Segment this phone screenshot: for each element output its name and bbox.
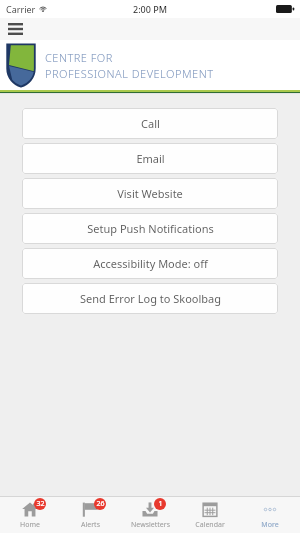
staticText: 2:00 PM xyxy=(133,3,167,15)
staticText: Setup Push Notifications xyxy=(87,221,214,236)
staticText: 1 xyxy=(158,499,163,509)
staticText: Calendar xyxy=(195,520,225,530)
staticText: Home xyxy=(20,520,40,530)
staticText: 26 xyxy=(96,499,105,509)
button[interactable]: 26 xyxy=(60,497,120,533)
staticText: 32 xyxy=(36,499,45,509)
button[interactable]: Visit Website xyxy=(22,178,278,209)
button[interactable]: Call xyxy=(22,108,278,139)
staticText: Visit Website xyxy=(117,186,183,201)
staticText: Carrier xyxy=(6,3,36,15)
staticText: Alerts xyxy=(81,520,100,530)
button[interactable]: Email xyxy=(22,143,278,174)
button[interactable]: 1 xyxy=(120,497,180,533)
button[interactable]: 32 xyxy=(0,497,60,533)
staticText: CENTRE FOR xyxy=(45,50,113,65)
button[interactable]: Accessibility Mode: off xyxy=(22,248,278,279)
staticText: Send Error Log to Skoolbag xyxy=(80,291,221,306)
staticText: Newsletters xyxy=(131,520,170,530)
staticText: More xyxy=(261,520,279,530)
staticText: Accessibility Mode: off xyxy=(93,256,208,271)
button[interactable]: More xyxy=(240,497,300,533)
staticText: Call xyxy=(141,116,160,131)
staticText: Email xyxy=(136,151,165,166)
staticText: PROFESSIONAL DEVELOPMENT xyxy=(45,66,214,81)
button[interactable]: Calendar xyxy=(180,497,240,533)
button[interactable]: Send Error Log to Skoolbag xyxy=(22,283,278,314)
button[interactable]: Open navigation menu xyxy=(4,18,26,40)
button[interactable]: Setup Push Notifications xyxy=(22,213,278,244)
